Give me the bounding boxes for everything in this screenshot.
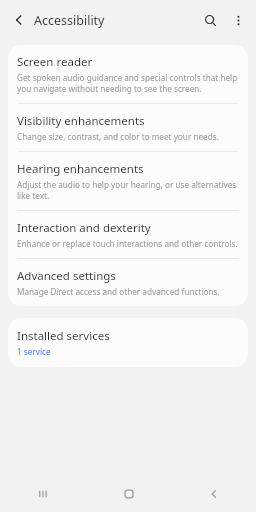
staticText: Get spoken audio guidance and special co… [17, 72, 238, 94]
staticText: Adjust the audio to help your hearing, o… [17, 179, 238, 201]
staticText: Change size, contrast, and color to meet… [17, 131, 219, 142]
button[interactable]: Advanced settings [8, 259, 248, 306]
button[interactable]: Back [6, 7, 32, 33]
staticText: Manage Direct access and other advanced … [17, 286, 220, 297]
staticText: Enhance or replace touch interactions an… [17, 238, 238, 249]
staticText: Installed services [17, 328, 110, 344]
staticText: Visibility enhancements [17, 113, 145, 129]
staticText: Hearing enhancements [17, 161, 144, 177]
button[interactable]: Installed services [8, 318, 248, 367]
staticText: Accessibility [34, 12, 105, 29]
button[interactable]: More options [225, 7, 251, 33]
button[interactable]: Search [197, 7, 223, 33]
staticText: 1 service [17, 346, 51, 357]
staticText: Interaction and dexterity [17, 220, 151, 236]
button[interactable]: Interaction and dexterity [8, 211, 248, 258]
button[interactable]: Screen reader [8, 45, 248, 103]
button[interactable]: Visibility enhancements [8, 104, 248, 151]
staticText: Advanced settings [17, 268, 116, 284]
staticText: Screen reader [17, 54, 93, 70]
button[interactable]: Home [86, 476, 171, 512]
button[interactable]: Recent apps [0, 476, 86, 512]
button[interactable]: Hearing enhancements [8, 152, 248, 210]
button[interactable]: Back [171, 476, 256, 512]
